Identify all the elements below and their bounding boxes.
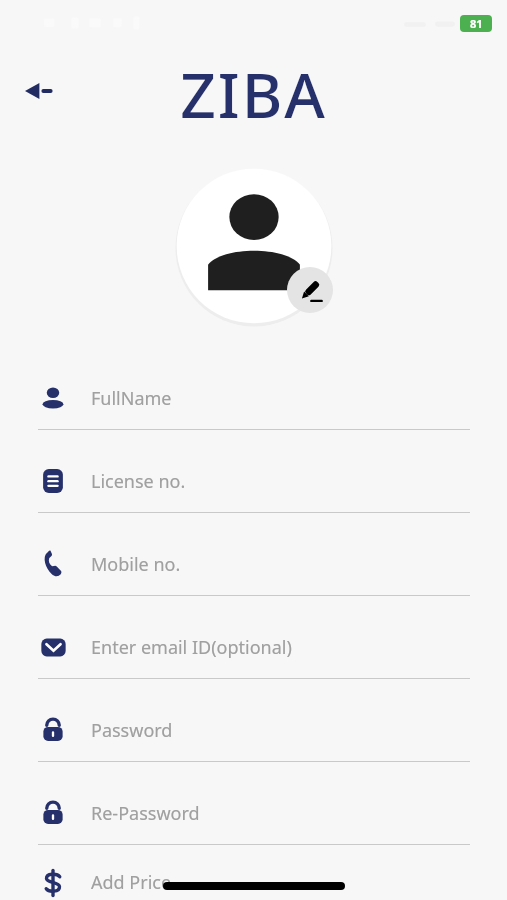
staticText: Password [91, 718, 173, 743]
button[interactable]: Profile photo [169, 161, 339, 331]
staticText: License no. [91, 469, 186, 494]
staticText: Re-Password [91, 801, 200, 826]
staticText: ZIBA [180, 52, 327, 136]
button[interactable]: Password [0, 699, 507, 782]
button[interactable]: Edit profile photo [287, 267, 333, 313]
button[interactable]: Add Price [0, 865, 507, 900]
button[interactable]: License no. [0, 450, 507, 533]
staticText: Mobile no. [91, 552, 181, 577]
staticText: Enter email ID(optional) [91, 635, 292, 660]
button[interactable]: Enter email ID(optional) [0, 616, 507, 699]
button[interactable]: FullName [0, 367, 507, 450]
staticText: FullName [91, 386, 172, 411]
staticText: 81 [470, 16, 483, 31]
button[interactable]: Mobile no. [0, 533, 507, 616]
button[interactable]: Back [14, 64, 68, 118]
staticText: Add Price [91, 870, 172, 895]
button[interactable]: Re-Password [0, 782, 507, 865]
